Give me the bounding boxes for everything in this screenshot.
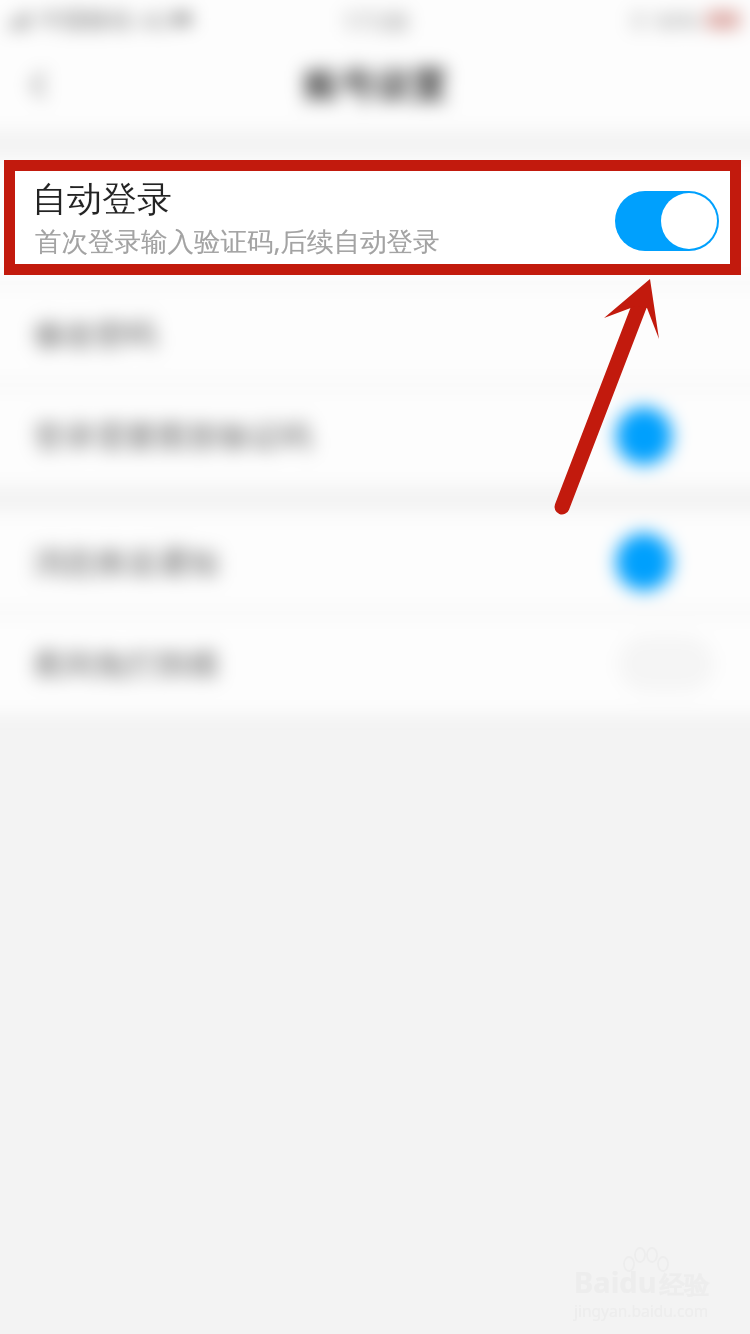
button[interactable]: 登录需要图形验证码 — [0, 386, 750, 486]
button[interactable]: 修改密码 — [0, 284, 750, 384]
button[interactable]: 自动登录开关 — [615, 191, 719, 251]
staticText: 4G — [140, 5, 169, 35]
button[interactable]: 夜间免打扰模 — [0, 614, 750, 714]
staticText: 消息推送通知 — [33, 543, 219, 582]
button[interactable]: 返回 — [8, 54, 70, 116]
staticText: 中国移动 — [40, 6, 132, 35]
staticText: 登录需要图形验证码 — [33, 417, 312, 456]
other: 指示箭头 — [550, 270, 675, 520]
staticText: 自动登录 — [32, 177, 172, 221]
button[interactable]: 自动登录 — [15, 171, 730, 265]
staticText: 首次登录输入验证码,后续自动登录 — [35, 223, 440, 259]
staticText: 修改密码 — [33, 315, 157, 354]
button[interactable]: 消息推送通知 — [0, 512, 750, 612]
staticText: 账号设置 — [303, 63, 447, 108]
staticText: 84% — [656, 5, 700, 35]
staticText: 17:08 — [342, 3, 409, 38]
staticText: 夜间免打扰模 — [33, 645, 219, 684]
